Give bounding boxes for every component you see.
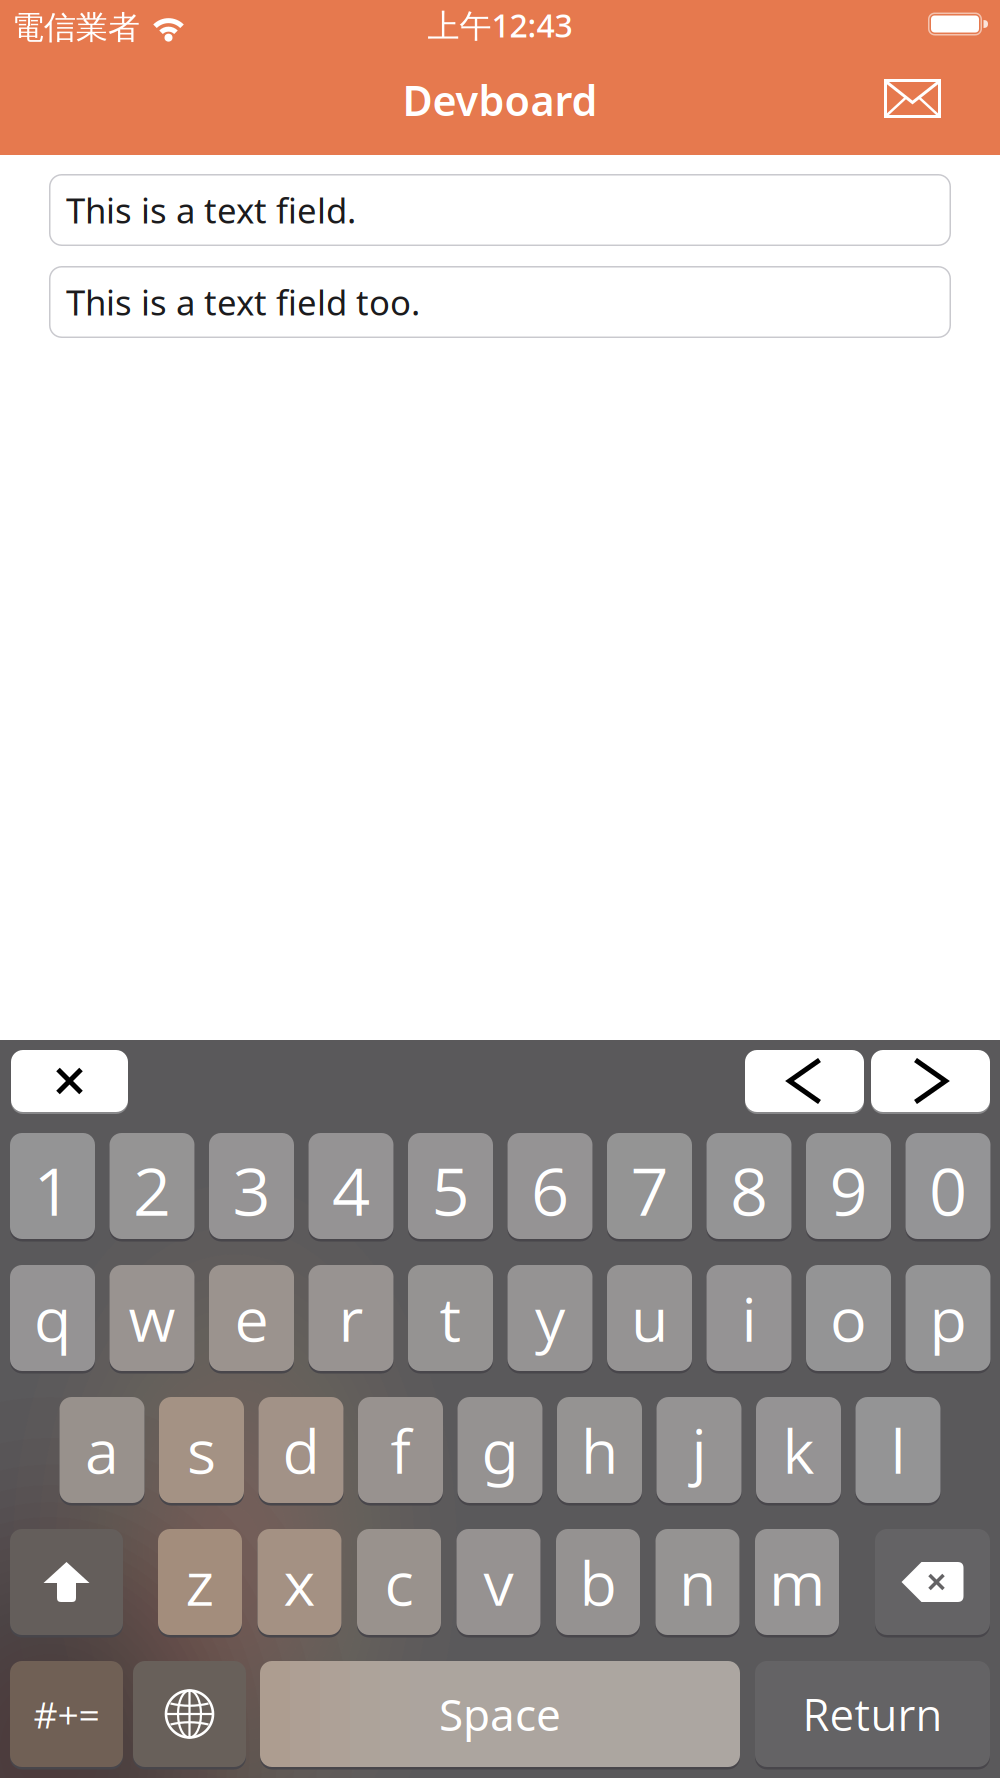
button[interactable]: q <box>10 1263 95 1372</box>
button[interactable]: 8 <box>706 1131 791 1240</box>
button[interactable]: b <box>556 1527 640 1636</box>
button[interactable]: 7 <box>607 1131 692 1240</box>
button[interactable]: 0 <box>905 1131 990 1240</box>
button[interactable]: l <box>855 1395 940 1504</box>
button[interactable]: m <box>755 1527 839 1636</box>
staticText: b <box>579 1540 616 1624</box>
staticText: This is a text field too. <box>66 279 420 325</box>
staticText: g <box>481 1408 518 1492</box>
button[interactable]: j <box>656 1395 741 1504</box>
staticText: d <box>282 1408 319 1492</box>
button[interactable]: w <box>109 1263 194 1372</box>
button[interactable]: 5 <box>408 1131 493 1240</box>
button[interactable]: Dismiss keyboard <box>11 1049 128 1113</box>
staticText: Return <box>802 1684 942 1744</box>
button[interactable]: Delete <box>875 1527 990 1636</box>
staticText: 8 <box>730 1145 768 1235</box>
staticText: r <box>338 1276 363 1360</box>
staticText: c <box>384 1540 413 1624</box>
staticText: x <box>283 1540 315 1624</box>
staticText: j <box>691 1408 706 1492</box>
button[interactable]: d <box>258 1395 343 1504</box>
button[interactable]: 9 <box>806 1131 891 1240</box>
staticText: 7 <box>630 1145 668 1235</box>
staticText: 5 <box>431 1145 469 1235</box>
staticText: v <box>483 1540 513 1624</box>
button[interactable]: r <box>308 1263 393 1372</box>
staticText: p <box>929 1276 966 1360</box>
button[interactable]: This is a text field too. <box>49 266 951 338</box>
staticText: t <box>439 1276 461 1360</box>
button[interactable]: y <box>507 1263 592 1372</box>
staticText: l <box>890 1408 905 1492</box>
button[interactable]: #+= <box>10 1659 123 1768</box>
staticText: h <box>581 1408 618 1492</box>
staticText: 4 <box>332 1145 370 1235</box>
button[interactable]: 6 <box>507 1131 592 1240</box>
button[interactable]: Next <box>871 1049 990 1113</box>
button[interactable]: x <box>257 1527 341 1636</box>
staticText: f <box>390 1408 410 1492</box>
staticText: e <box>234 1276 268 1360</box>
button[interactable]: a <box>59 1395 144 1504</box>
button[interactable]: u <box>607 1263 692 1372</box>
button[interactable]: Return <box>755 1659 990 1768</box>
staticText: Devboard <box>402 73 597 127</box>
button[interactable]: 4 <box>308 1131 393 1240</box>
staticText: Space <box>439 1685 561 1743</box>
button[interactable]: o <box>806 1263 891 1372</box>
button[interactable]: e <box>209 1263 294 1372</box>
button[interactable]: n <box>655 1527 739 1636</box>
button[interactable]: k <box>756 1395 841 1504</box>
staticText: i <box>741 1276 756 1360</box>
staticText: 6 <box>531 1145 569 1235</box>
staticText: 1 <box>33 1145 71 1235</box>
staticText: w <box>128 1276 175 1360</box>
staticText: s <box>187 1408 216 1492</box>
staticText: m <box>769 1540 825 1624</box>
staticText: u <box>631 1276 668 1360</box>
staticText: 上午12:43 <box>427 4 572 46</box>
staticText: 2 <box>133 1145 171 1235</box>
staticText: q <box>34 1276 71 1360</box>
staticText: 0 <box>929 1145 967 1235</box>
staticText: n <box>679 1540 716 1624</box>
button[interactable]: i <box>706 1263 791 1372</box>
staticText: y <box>535 1276 565 1360</box>
button[interactable]: Next keyboard <box>133 1659 246 1768</box>
staticText: z <box>185 1540 214 1624</box>
button[interactable]: t <box>408 1263 493 1372</box>
button[interactable]: 2 <box>109 1131 194 1240</box>
button[interactable]: c <box>357 1527 441 1636</box>
staticText: 3 <box>232 1145 270 1235</box>
staticText: This is a text field. <box>66 187 356 233</box>
staticText: #+= <box>33 1689 99 1739</box>
button[interactable]: 1 <box>10 1131 95 1240</box>
button[interactable]: Previous <box>745 1049 864 1113</box>
staticText: 電信業者 <box>12 8 140 47</box>
button[interactable]: z <box>158 1527 242 1636</box>
staticText: o <box>830 1276 867 1360</box>
button[interactable]: Mail <box>872 63 952 133</box>
button[interactable]: g <box>457 1395 542 1504</box>
button[interactable]: h <box>557 1395 642 1504</box>
staticText: 9 <box>829 1145 867 1235</box>
button[interactable]: This is a text field. <box>49 174 951 246</box>
button[interactable]: f <box>358 1395 443 1504</box>
staticText: a <box>85 1408 119 1492</box>
button[interactable]: Space <box>260 1659 740 1768</box>
button[interactable]: 3 <box>209 1131 294 1240</box>
button[interactable]: Shift <box>10 1527 123 1636</box>
staticText: k <box>782 1408 814 1492</box>
button[interactable]: p <box>905 1263 990 1372</box>
button[interactable]: s <box>159 1395 244 1504</box>
button[interactable]: v <box>456 1527 540 1636</box>
